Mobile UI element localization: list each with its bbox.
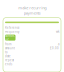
staticText: to: [5, 50, 8, 54]
staticText: Frequency: [5, 30, 19, 33]
button[interactable]: continue: [5, 35, 15, 41]
staticText: £0.00: [50, 46, 59, 50]
staticText: date: [5, 54, 11, 58]
staticText: amount: [5, 46, 15, 50]
staticText: make recurring payments: [18, 5, 46, 16]
staticText: Reference: [5, 26, 20, 29]
staticText: continue: [5, 34, 15, 41]
staticText: repeat: [5, 58, 14, 62]
staticText: from: [5, 42, 11, 46]
staticText: a: [58, 42, 59, 46]
staticText: wk: [56, 30, 59, 33]
staticText: ends: [5, 62, 12, 66]
